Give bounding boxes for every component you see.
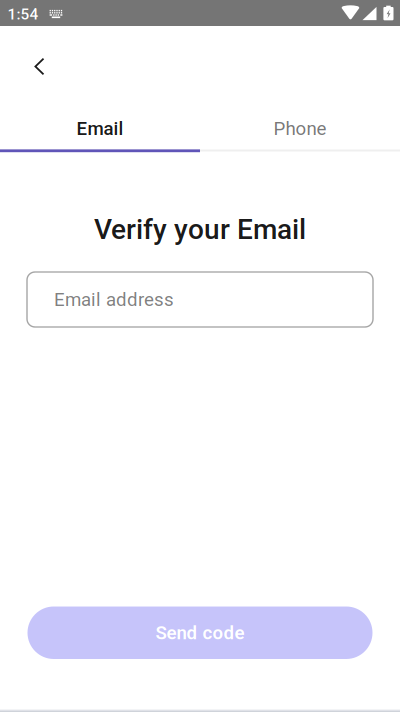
button[interactable]: Back	[17, 44, 61, 88]
staticText: Send code	[155, 622, 244, 644]
staticText: Email address	[54, 289, 174, 310]
staticText: Verify your Email	[94, 213, 306, 246]
staticText: Email	[76, 118, 123, 139]
button[interactable]: Send code	[27, 606, 372, 659]
button[interactable]: Phone	[200, 104, 400, 152]
staticText: Phone	[273, 118, 326, 139]
button[interactable]: Email	[0, 104, 200, 152]
staticText: 1:54	[8, 5, 39, 23]
